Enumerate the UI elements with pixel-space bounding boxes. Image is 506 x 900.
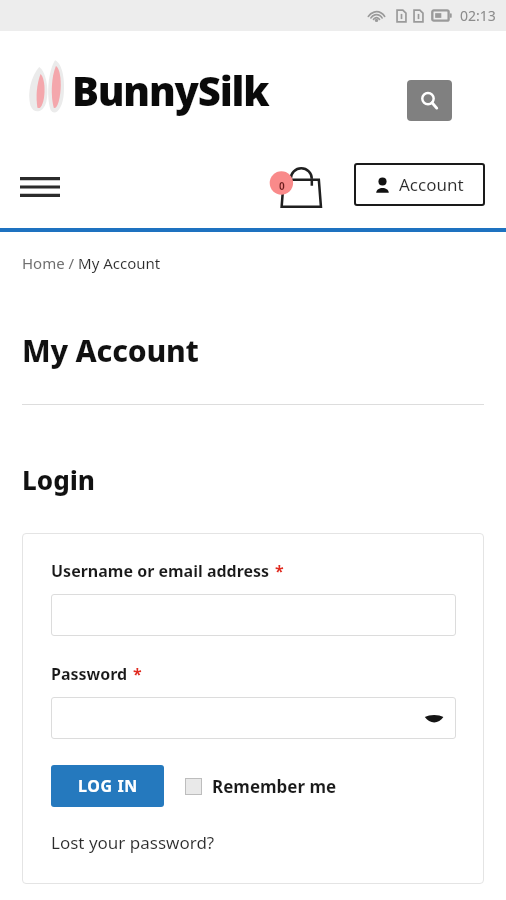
staticText: Remember me bbox=[212, 775, 337, 798]
staticText: * bbox=[275, 560, 284, 582]
button[interactable]: Lost your password? bbox=[51, 831, 215, 854]
staticText: 02:13 bbox=[460, 6, 496, 25]
staticText: Password bbox=[51, 663, 128, 685]
button[interactable]: Cart, 0 items bbox=[258, 157, 336, 217]
button[interactable]: Account bbox=[354, 163, 485, 206]
button[interactable]: Search bbox=[407, 80, 452, 121]
button[interactable]: Show password bbox=[423, 709, 445, 727]
button[interactable]: LOG IN bbox=[51, 765, 164, 807]
button[interactable]: Show password bbox=[51, 697, 456, 739]
button[interactable] bbox=[51, 594, 456, 636]
staticText: Login bbox=[22, 462, 95, 497]
staticText: Username or email address bbox=[51, 560, 270, 582]
staticText: My Account bbox=[22, 330, 199, 371]
staticText: * bbox=[133, 663, 142, 685]
button[interactable]: Home / My Account bbox=[22, 253, 161, 273]
staticText: Account bbox=[399, 173, 464, 196]
button[interactable]: Menu bbox=[14, 163, 66, 211]
button[interactable]: Remember me bbox=[185, 775, 337, 798]
staticText: BunnySilk bbox=[72, 63, 269, 117]
staticText: LOG IN bbox=[78, 775, 138, 797]
staticText: 0 bbox=[279, 179, 285, 193]
